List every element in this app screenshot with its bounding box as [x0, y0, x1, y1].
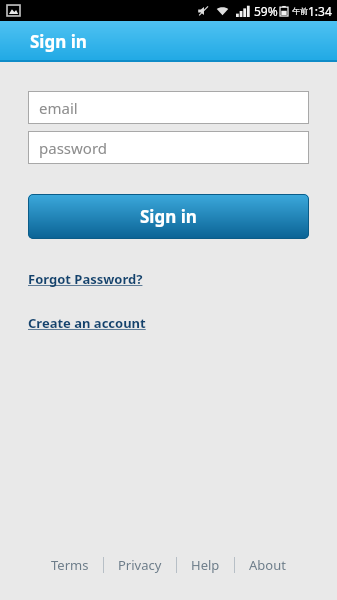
staticText: Privacy — [118, 556, 162, 574]
button[interactable]: Forgot Password? — [28, 270, 143, 288]
button[interactable]: Create an account — [28, 314, 146, 332]
staticText: Help — [191, 556, 220, 574]
staticText: Sign in — [140, 205, 197, 228]
staticText: email — [39, 98, 78, 118]
staticText: Sign in — [30, 30, 87, 53]
staticText: 59% — [254, 3, 278, 19]
staticText: About — [249, 556, 286, 574]
staticText: 1:34 — [308, 3, 332, 19]
button[interactable]: Privacy — [104, 550, 176, 580]
staticText: Create an account — [28, 314, 146, 332]
staticText: Terms — [51, 556, 89, 574]
button[interactable]: email — [28, 91, 309, 124]
staticText: 午前 — [292, 6, 308, 16]
button[interactable]: Help — [177, 550, 234, 580]
staticText: Forgot Password? — [28, 270, 143, 288]
staticText: password — [39, 138, 107, 158]
button[interactable]: Sign in — [28, 194, 309, 239]
button[interactable]: Terms — [37, 550, 103, 580]
button[interactable]: About — [235, 550, 300, 580]
button[interactable]: password — [28, 131, 309, 164]
